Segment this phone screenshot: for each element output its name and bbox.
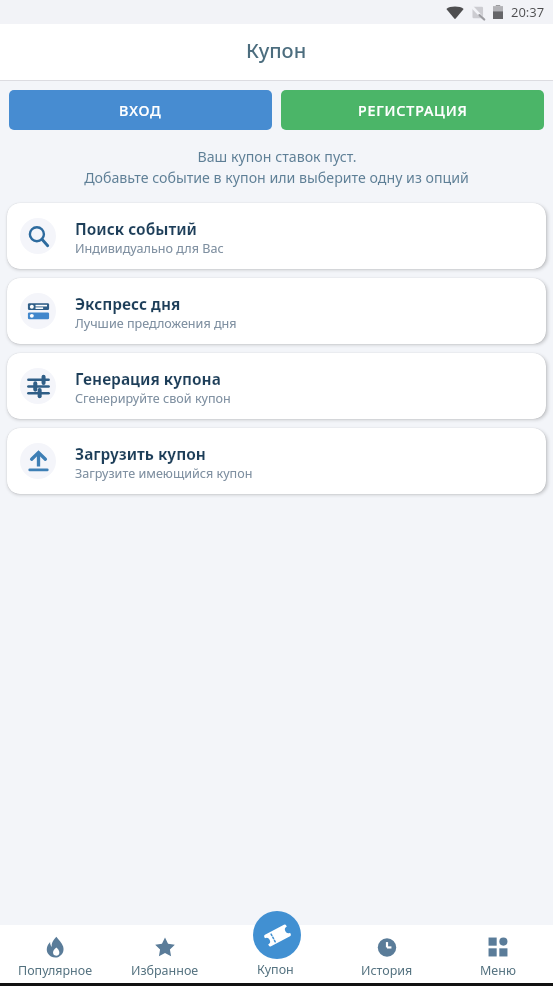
staticText: Экспресс дня (75, 294, 181, 315)
button[interactable]: История (331, 925, 442, 983)
staticText: Генерация купона (75, 369, 221, 390)
button[interactable]: ВХОД (9, 90, 272, 130)
staticText: Поиск событий (75, 219, 197, 240)
staticText: Сгенерируйте свой купон (75, 390, 231, 407)
button[interactable]: Популярное (0, 925, 110, 983)
button[interactable]: Загрузить купон (7, 428, 546, 494)
button[interactable]: Купон (220, 925, 331, 983)
button[interactable]: РЕГИСТРАЦИЯ (281, 90, 544, 130)
button[interactable]: Экспресс дня (7, 278, 546, 344)
staticText: Загрузите имеющийся купон (75, 465, 253, 482)
staticText: Загрузить купон (75, 444, 206, 465)
button[interactable]: Меню (442, 925, 553, 983)
staticText: История (361, 962, 413, 979)
staticText: Индивидуально для Вас (75, 240, 224, 257)
staticText: Ваш купон ставок пуст. (197, 147, 357, 166)
staticText: Меню (480, 962, 516, 979)
staticText: Купон (257, 961, 294, 978)
button[interactable]: Избранное (110, 925, 220, 983)
staticText: Добавьте событие в купон или выберите од… (84, 168, 469, 187)
button[interactable]: Генерация купона (7, 353, 546, 419)
staticText: Популярное (18, 962, 93, 979)
staticText: Избранное (131, 962, 199, 979)
staticText: Лучшие предложения дня (75, 315, 237, 332)
staticText: РЕГИСТРАЦИЯ (358, 101, 468, 120)
staticText: ВХОД (119, 101, 162, 120)
staticText: Купон (246, 37, 307, 64)
staticText: 20:37 (511, 3, 545, 21)
button[interactable]: Купон (253, 911, 301, 959)
button[interactable]: Поиск событий (7, 203, 546, 269)
